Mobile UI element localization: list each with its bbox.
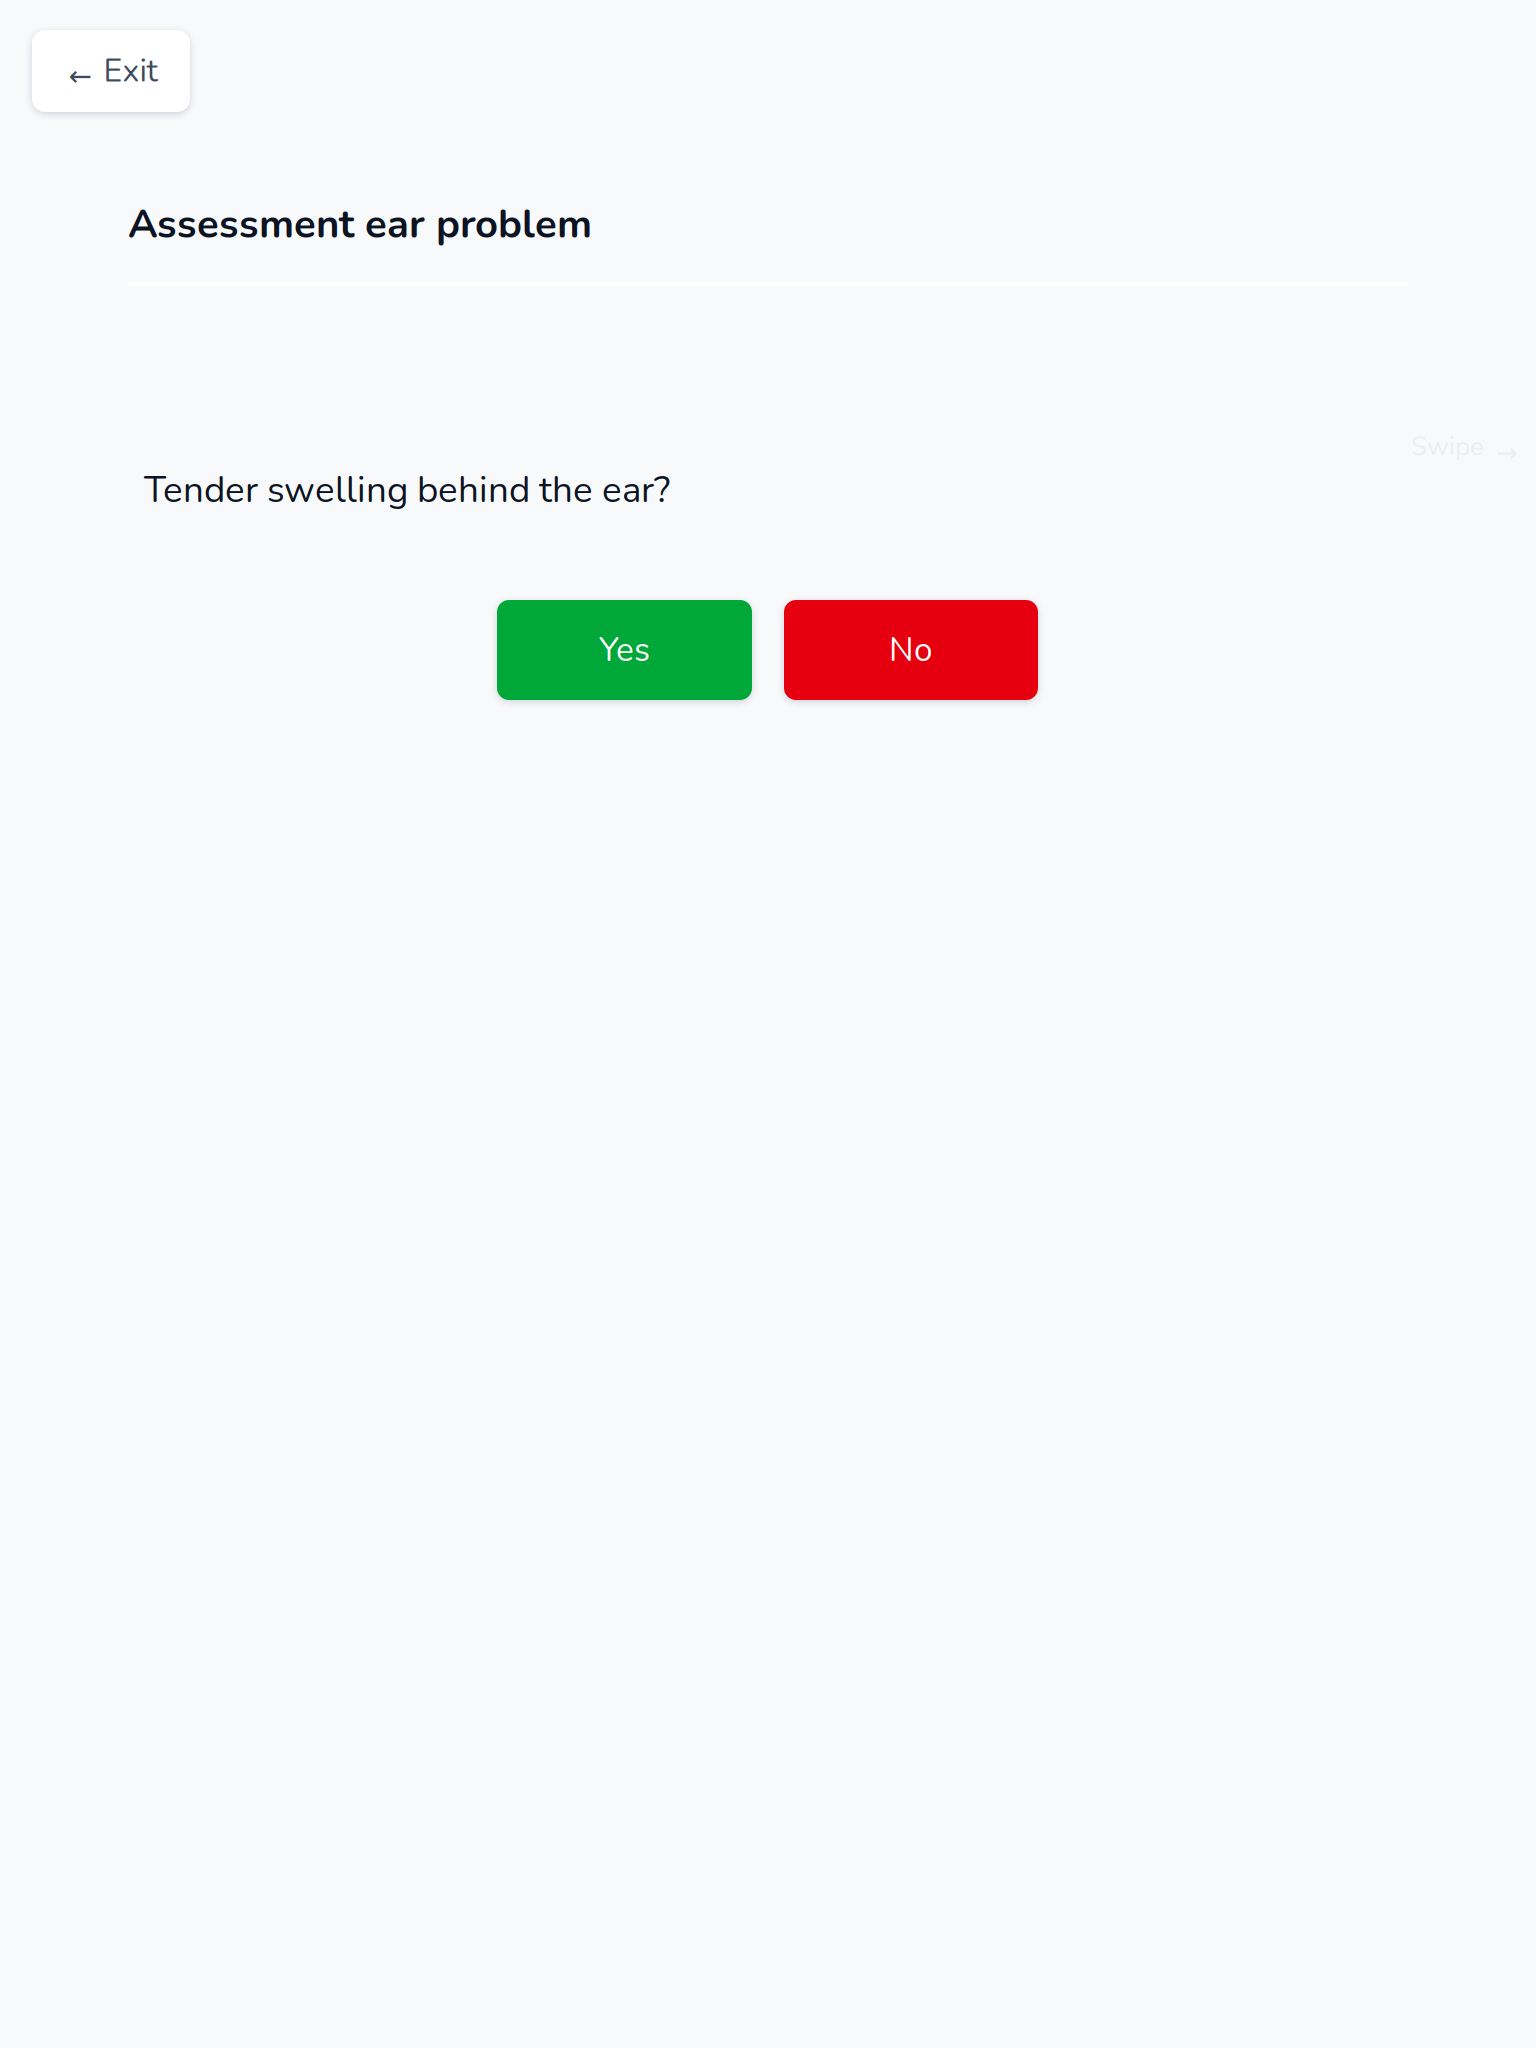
button[interactable]: Exit assessment bbox=[32, 30, 190, 112]
staticText: No bbox=[889, 627, 933, 673]
staticText: Swipe bbox=[1411, 429, 1484, 464]
staticText: ← bbox=[68, 60, 91, 92]
staticText: Yes bbox=[599, 627, 650, 673]
button[interactable]: No bbox=[784, 600, 1038, 700]
staticText: Exit bbox=[103, 49, 157, 93]
staticText: → bbox=[1496, 438, 1518, 468]
button[interactable]: Yes bbox=[497, 600, 752, 700]
staticText: Assessment ear problem bbox=[128, 197, 592, 252]
staticText: Tender swelling behind the ear? bbox=[144, 465, 670, 515]
